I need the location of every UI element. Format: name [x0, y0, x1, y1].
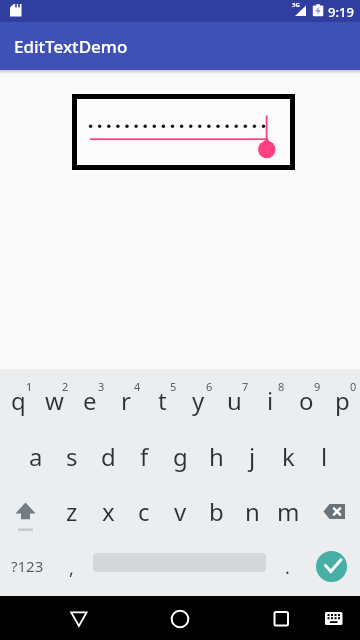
button[interactable]: o	[288, 378, 324, 422]
staticText: l	[321, 440, 328, 473]
staticText: .	[285, 555, 290, 580]
staticText: w	[45, 384, 64, 417]
staticText: o	[299, 384, 314, 417]
staticText: 9	[314, 379, 321, 393]
staticText: 2	[62, 379, 69, 393]
staticText: h	[209, 440, 224, 473]
button[interactable]: p	[324, 378, 360, 422]
button[interactable]: d	[90, 434, 126, 478]
staticText: p	[335, 384, 350, 417]
staticText: d	[101, 440, 116, 473]
button[interactable]: z	[54, 489, 90, 533]
button[interactable]: .	[269, 545, 305, 589]
staticText: z	[66, 495, 78, 528]
button[interactable]: f	[126, 434, 162, 478]
staticText: k	[282, 440, 295, 473]
button[interactable]	[77, 99, 290, 165]
button[interactable]: ,	[53, 546, 89, 590]
staticText: EditTextDemo	[14, 35, 128, 58]
staticText: j	[249, 440, 256, 473]
staticText: v	[174, 495, 187, 528]
staticText: s	[66, 440, 78, 473]
button[interactable]: n	[234, 489, 270, 533]
button[interactable]	[316, 551, 347, 582]
staticText: t	[158, 384, 167, 417]
button[interactable]: a	[18, 434, 54, 478]
button[interactable]: g	[162, 434, 198, 478]
button[interactable]	[5, 494, 45, 534]
button[interactable]: ?123	[9, 548, 45, 584]
staticText: b	[209, 495, 224, 528]
staticText: n	[245, 495, 260, 528]
staticText: 7	[242, 379, 249, 393]
button[interactable]: m	[270, 489, 306, 533]
staticText: i	[267, 384, 274, 417]
button[interactable]: y	[180, 378, 216, 422]
staticText: c	[138, 495, 150, 528]
staticText: 8	[278, 379, 285, 393]
button[interactable]: r	[108, 378, 144, 422]
button[interactable]	[0, 596, 120, 640]
button[interactable]: e	[72, 378, 108, 422]
button[interactable]: b	[198, 489, 234, 533]
button[interactable]	[240, 596, 360, 640]
staticText: 5	[170, 379, 177, 393]
staticText: 9:19	[328, 3, 354, 21]
staticText: 3G	[292, 1, 300, 9]
staticText: q	[11, 384, 26, 417]
button[interactable]: v	[162, 489, 198, 533]
button[interactable]: s	[54, 434, 90, 478]
staticText: 0	[350, 379, 357, 393]
staticText: f	[140, 440, 149, 473]
staticText: 1	[26, 379, 33, 393]
button[interactable]: i	[252, 378, 288, 422]
staticText: m	[277, 495, 300, 528]
button[interactable]: q	[0, 378, 36, 422]
button[interactable]: c	[126, 489, 162, 533]
button[interactable]: t	[144, 378, 180, 422]
button[interactable]: k	[270, 434, 306, 478]
staticText: x	[102, 495, 115, 528]
staticText: 3	[98, 379, 105, 393]
staticText: 6	[206, 379, 213, 393]
button[interactable]	[120, 596, 240, 640]
button[interactable]: h	[198, 434, 234, 478]
button[interactable]: j	[234, 434, 270, 478]
staticText: 4	[134, 379, 141, 393]
button[interactable]: w	[36, 378, 72, 422]
staticText: y	[192, 384, 205, 417]
staticText: r	[121, 384, 131, 417]
staticText: g	[173, 440, 188, 473]
staticText: ?123	[11, 556, 44, 576]
button[interactable]: u	[216, 378, 252, 422]
button[interactable]: l	[306, 434, 342, 478]
staticText: a	[29, 440, 43, 473]
staticText: u	[227, 384, 242, 417]
button[interactable]	[318, 494, 358, 534]
staticText: e	[83, 384, 97, 417]
button[interactable]: x	[90, 489, 126, 533]
staticText: ,	[69, 556, 74, 581]
